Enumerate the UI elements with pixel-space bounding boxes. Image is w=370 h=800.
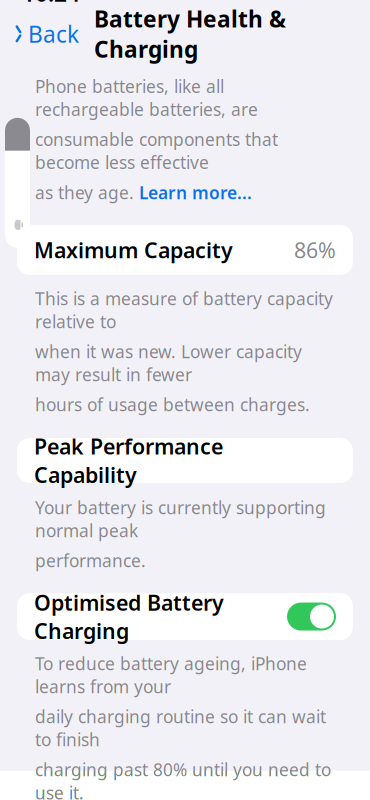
button[interactable]: Maximum Capacity (17, 225, 353, 275)
button[interactable]: Optimised Battery Charging (17, 593, 353, 640)
button[interactable]: Peak Performance Capability (17, 438, 353, 483)
staticText: as they age. (35, 181, 139, 204)
button[interactable]: Learn more... (139, 181, 252, 204)
staticText: Peak Performance Capability (34, 432, 223, 489)
staticText: hours of usage between charges. (35, 393, 310, 416)
staticText: when it was new. Lower capacity may resu… (35, 340, 302, 386)
staticText: To reduce battery ageing, iPhone learns … (35, 652, 307, 698)
staticText: Optimised Battery Charging (34, 588, 224, 645)
staticText: performance. (35, 549, 146, 572)
staticText: charging past 80% until you need to use … (35, 758, 331, 800)
staticText: 86% (294, 236, 336, 264)
button[interactable]: Back (0, 16, 92, 52)
staticText: Maximum Capacity (34, 236, 233, 264)
staticText: consumable components that become less e… (35, 128, 278, 174)
staticText: Back (28, 19, 79, 49)
staticText: This is a measure of battery capacity re… (35, 287, 333, 333)
staticText: Learn more... (139, 181, 252, 204)
staticText: daily charging routine so it can wait to… (35, 705, 326, 751)
staticText: Your battery is currently supporting nor… (35, 496, 326, 542)
staticText: Phone batteries, like all rechargeable b… (35, 75, 258, 121)
staticText: Battery Health & Charging (94, 4, 286, 64)
staticText: 10:24 (22, 0, 80, 8)
